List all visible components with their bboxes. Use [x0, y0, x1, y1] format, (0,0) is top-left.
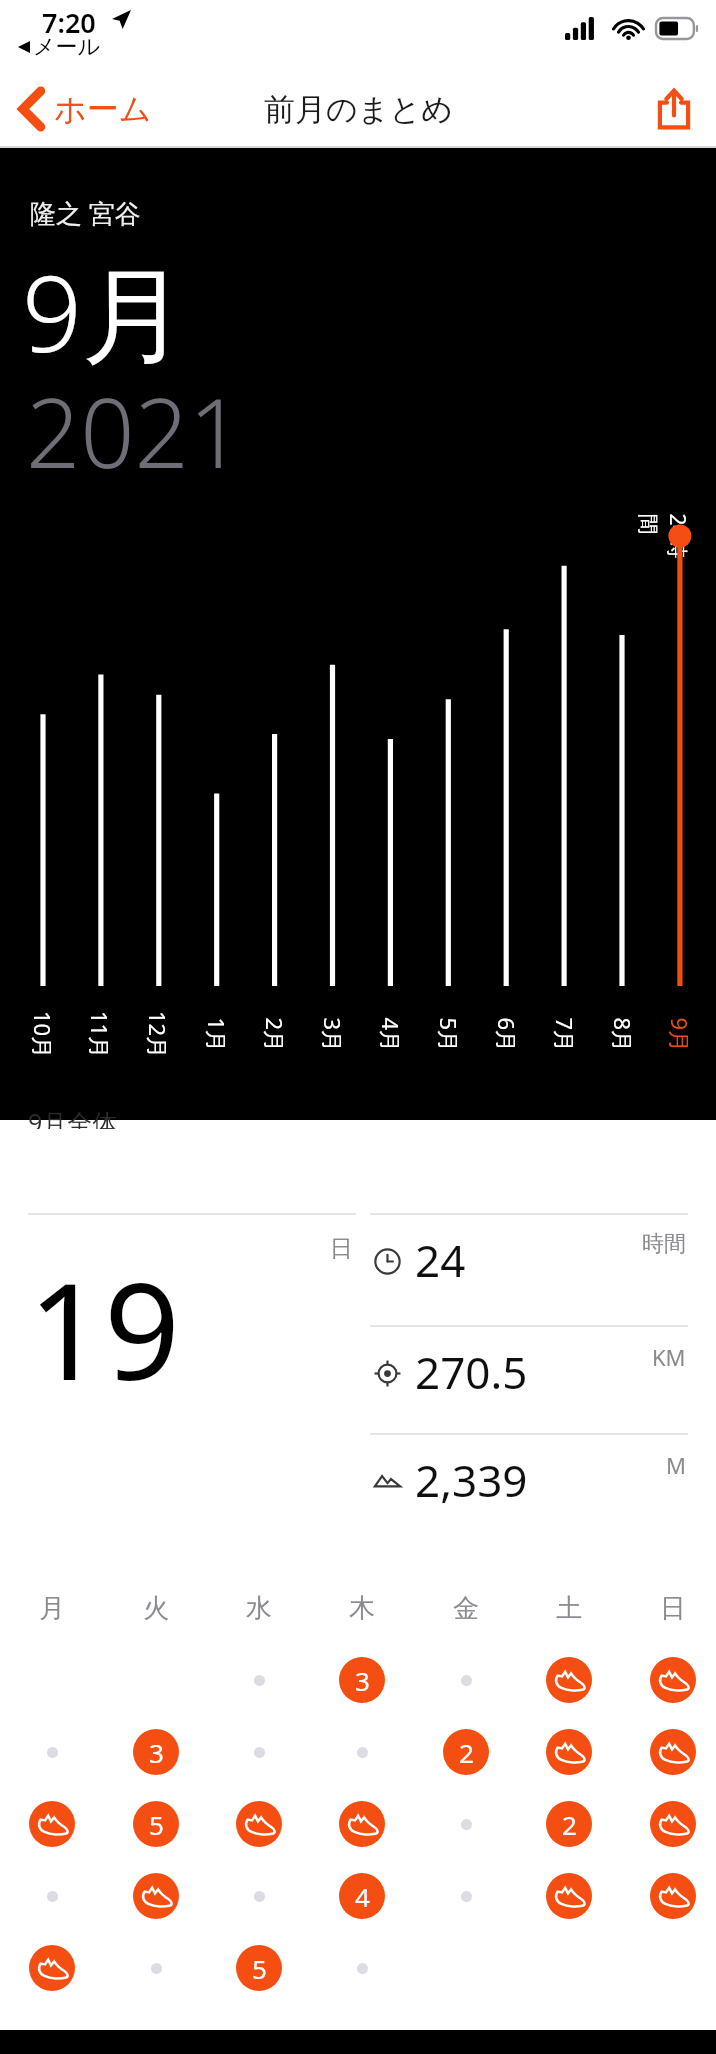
button[interactable]: 月 [30, 1588, 74, 1628]
staticText: 日 [660, 1592, 686, 1625]
button[interactable]: 土 [547, 1588, 591, 1628]
staticText: 日 [330, 1234, 353, 1263]
button[interactable]: 4 [339, 1873, 385, 1919]
button[interactable]: 2,339 [370, 1436, 688, 1540]
staticText: 月 [39, 1592, 65, 1625]
staticText: 5月 [433, 1017, 463, 1052]
staticText: 2 [459, 1735, 474, 1770]
staticText: 5 [149, 1807, 164, 1842]
staticText: 9月 [22, 240, 187, 383]
staticText: 2 [562, 1807, 577, 1842]
staticText: 前月のまとめ [264, 90, 453, 129]
staticText: 水 [246, 1592, 272, 1625]
staticText: 時間 [642, 1230, 686, 1258]
button[interactable]: Run day [546, 1657, 592, 1703]
button[interactable]: Share [650, 81, 698, 137]
button[interactable]: 3 [133, 1729, 179, 1775]
staticText: 270.5 [415, 1342, 528, 1402]
button[interactable]: Run day [650, 1657, 696, 1703]
button[interactable]: Run day [546, 1873, 592, 1919]
staticText: 8月 [607, 1017, 637, 1052]
staticText: 7月 [549, 1017, 579, 1052]
staticText: 2021 [26, 366, 243, 495]
staticText: 火 [143, 1592, 169, 1625]
button[interactable]: 2 [443, 1729, 489, 1775]
staticText: 3月 [317, 1017, 347, 1052]
staticText: 24時間 [634, 513, 691, 573]
staticText: 24 [415, 1230, 466, 1290]
staticText: 4月 [375, 1017, 405, 1052]
button[interactable]: 2 [546, 1801, 592, 1847]
button[interactable]: 火 [134, 1588, 178, 1628]
button[interactable]: Run day [650, 1801, 696, 1847]
staticText: 木 [349, 1592, 375, 1625]
button[interactable]: Run day [339, 1801, 385, 1847]
staticText: 金 [453, 1592, 479, 1625]
button[interactable]: 日 [651, 1588, 695, 1628]
staticText: 6月 [491, 1017, 521, 1052]
button[interactable]: Run day [133, 1873, 179, 1919]
button[interactable]: 5 [133, 1801, 179, 1847]
staticText: 9月全体 [28, 1105, 118, 1129]
staticText: ホーム [54, 89, 152, 129]
staticText: 12月 [143, 1011, 173, 1059]
button[interactable]: 3 [339, 1657, 385, 1703]
button[interactable]: 木 [340, 1588, 384, 1628]
button[interactable]: Run day [650, 1729, 696, 1775]
staticText: 5 [252, 1951, 267, 1986]
button[interactable]: Run day [546, 1729, 592, 1775]
staticText: 11月 [85, 1011, 115, 1059]
button[interactable]: 270.5 [370, 1328, 688, 1432]
button[interactable]: ホーム [14, 81, 158, 137]
staticText: 19 [28, 1238, 181, 1419]
staticText: 3 [355, 1663, 370, 1698]
staticText: 2,339 [415, 1450, 528, 1510]
staticText: 3 [149, 1735, 164, 1770]
staticText: 1月 [201, 1017, 231, 1052]
staticText: 4 [355, 1879, 370, 1914]
staticText: M [666, 1450, 686, 1480]
button[interactable]: 19 [24, 1238, 344, 1438]
staticText: 10月 [28, 1011, 58, 1059]
button[interactable]: 水 [237, 1588, 281, 1628]
staticText: メール [33, 33, 101, 61]
staticText: 2月 [259, 1017, 289, 1052]
staticText: 7:20 [42, 4, 96, 41]
staticText: 隆之 宮谷 [30, 195, 141, 231]
button[interactable]: Run day [29, 1945, 75, 1991]
staticText: 土 [556, 1592, 582, 1625]
button[interactable]: 金 [444, 1588, 488, 1628]
button[interactable]: Run day [650, 1873, 696, 1919]
staticText: 9月 [664, 1017, 694, 1052]
button[interactable]: 5 [236, 1945, 282, 1991]
staticText: KM [652, 1342, 686, 1372]
button[interactable]: Run day [29, 1801, 75, 1847]
button[interactable]: 24 [370, 1216, 688, 1320]
button[interactable]: Run day [236, 1801, 282, 1847]
